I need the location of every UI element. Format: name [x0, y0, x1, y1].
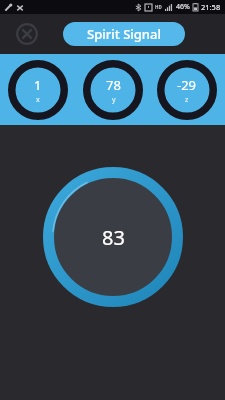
staticText: z	[185, 95, 189, 105]
button[interactable]: Spirit Signal	[63, 22, 185, 46]
button[interactable]: 1	[7, 59, 69, 121]
button[interactable]: Close	[14, 21, 40, 47]
button[interactable]: -29	[156, 59, 218, 121]
staticText: 21:58	[201, 2, 221, 12]
staticText: -29	[177, 76, 197, 94]
staticText: Spirit Signal	[87, 25, 161, 43]
staticText: 1	[34, 76, 42, 94]
staticText: 83	[102, 224, 125, 251]
staticText: 46%	[176, 2, 190, 12]
staticText: 78	[106, 76, 121, 94]
staticText: HD	[155, 4, 162, 10]
button[interactable]: 78	[82, 59, 144, 121]
staticText: x	[36, 95, 40, 105]
staticText: y	[112, 95, 116, 105]
